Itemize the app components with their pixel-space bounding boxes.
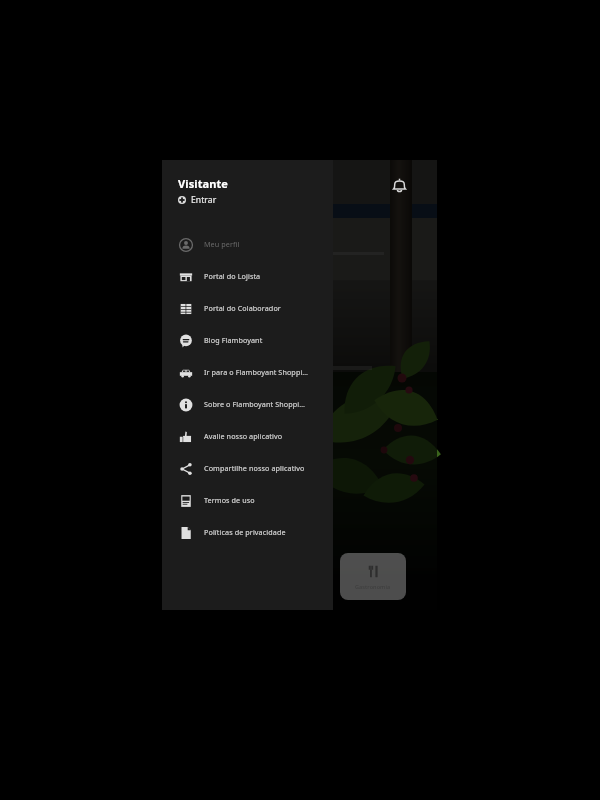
staticText: Avalie nosso aplicativo bbox=[204, 431, 283, 441]
button[interactable]: Avalie nosso aplicativo bbox=[162, 420, 333, 452]
staticText: Compartilhe nosso aplicativo bbox=[204, 463, 305, 473]
button[interactable]: Notificações bbox=[384, 170, 414, 200]
staticText: Ir para o Flamboyant Shoppi… bbox=[204, 367, 309, 377]
staticText: Gastronomia bbox=[355, 583, 391, 590]
button[interactable]: Gastronomia bbox=[340, 553, 406, 600]
button[interactable]: Visitante bbox=[162, 174, 333, 212]
staticText: Blog Flamboyant bbox=[204, 335, 263, 345]
button[interactable]: Compartilhe nosso aplicativo bbox=[162, 452, 333, 484]
staticText: Meu perfil bbox=[204, 239, 240, 249]
button[interactable]: Meu perfil bbox=[162, 228, 333, 260]
staticText: Entrar bbox=[191, 194, 217, 206]
button[interactable]: Ir para o Flamboyant Shoppi… bbox=[162, 356, 333, 388]
staticText: Portal do Lojista bbox=[204, 271, 261, 281]
staticText: Sobre o Flamboyant Shoppi… bbox=[204, 399, 305, 409]
staticText: Visitante bbox=[178, 176, 229, 191]
staticText: Políticas de privacidade bbox=[204, 527, 286, 537]
button[interactable]: Blog Flamboyant bbox=[162, 324, 333, 356]
button[interactable]: Políticas de privacidade bbox=[162, 516, 333, 548]
staticText: Termos de uso bbox=[204, 495, 255, 505]
button[interactable]: Portal do Colaborador bbox=[162, 292, 333, 324]
staticText: Portal do Colaborador bbox=[204, 303, 281, 313]
button[interactable]: Termos de uso bbox=[162, 484, 333, 516]
button[interactable]: Portal do Lojista bbox=[162, 260, 333, 292]
button[interactable]: Sobre o Flamboyant Shoppi… bbox=[162, 388, 333, 420]
